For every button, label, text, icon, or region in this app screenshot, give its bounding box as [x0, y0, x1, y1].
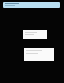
button[interactable] — [24, 48, 54, 61]
button[interactable] — [23, 30, 47, 39]
button[interactable] — [3, 2, 60, 8]
